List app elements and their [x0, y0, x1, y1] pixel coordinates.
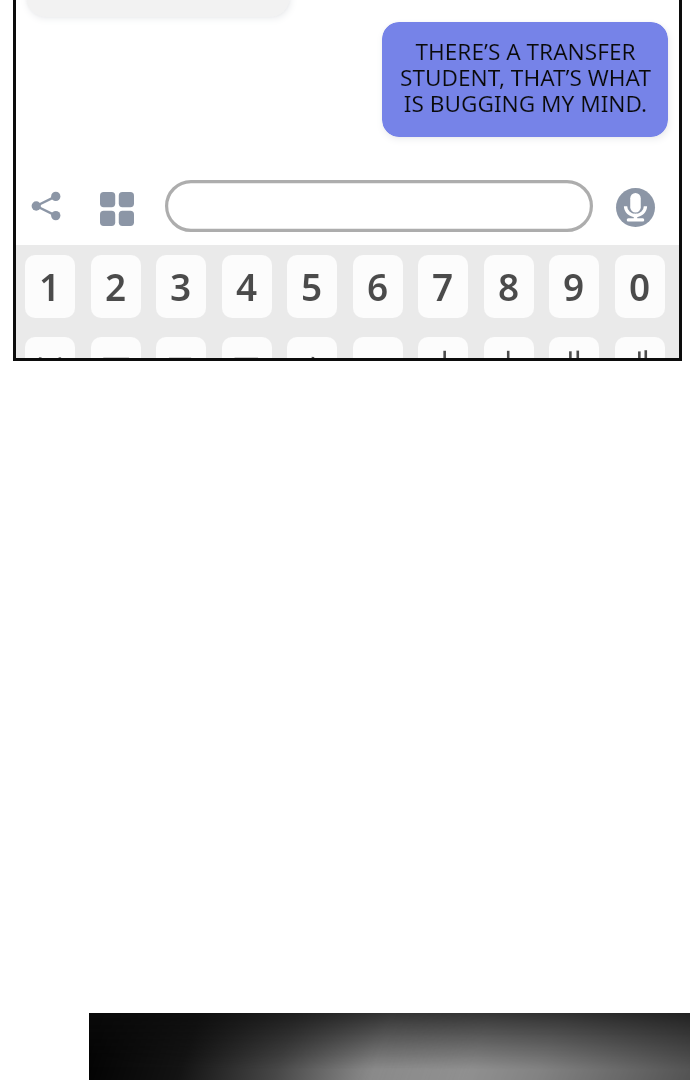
staticText: THERE’S A TRANSFER STUDENT, THAT’S WHAT …: [400, 36, 651, 119]
staticText: ㅅ: [293, 343, 331, 358]
button[interactable]: Share: [19, 179, 73, 233]
staticText: 8: [498, 261, 520, 311]
staticText: ㄷ: [162, 343, 200, 358]
button[interactable]: THERE’S A TRANSFER STUDENT, THAT’S WHAT …: [382, 22, 668, 137]
button[interactable]: ㅅ: [287, 337, 337, 358]
staticText: 5: [301, 261, 323, 311]
button[interactable]: ㄱ: [222, 337, 272, 358]
staticText: 9: [563, 261, 585, 311]
staticText: 4: [236, 261, 258, 311]
button[interactable]: [165, 180, 593, 232]
button[interactable]: 9: [549, 255, 599, 318]
staticText: ㅈ: [97, 343, 135, 358]
button[interactable]: Apps: [90, 182, 144, 236]
button[interactable]: ㅂ: [25, 337, 75, 358]
staticText: ㅐ: [555, 343, 593, 358]
staticText: 0: [629, 261, 651, 311]
button[interactable]: ㅕ: [418, 337, 468, 358]
button[interactable]: 6: [353, 255, 403, 318]
staticText: ㅑ: [490, 343, 528, 358]
button[interactable]: 8: [484, 255, 534, 318]
staticText: 2: [105, 261, 127, 311]
button[interactable]: Voice input: [608, 180, 662, 234]
staticText: 1: [39, 261, 61, 311]
button[interactable]: 1: [25, 255, 75, 318]
staticText: ㅕ: [424, 343, 462, 358]
button[interactable]: ㅔ: [615, 337, 665, 358]
staticText: ㅂ: [31, 343, 69, 358]
staticText: 7: [432, 261, 454, 311]
button[interactable]: ㅑ: [484, 337, 534, 358]
staticText: ㅔ: [621, 343, 659, 358]
button[interactable]: 2: [91, 255, 141, 318]
button[interactable]: 7: [418, 255, 468, 318]
staticText: 3: [170, 261, 192, 311]
staticText: ㄱ: [228, 343, 266, 358]
button[interactable]: 5: [287, 255, 337, 318]
button[interactable]: ㅈ: [91, 337, 141, 358]
button[interactable]: ㅛ: [353, 337, 403, 358]
button[interactable]: 4: [222, 255, 272, 318]
button[interactable]: 3: [156, 255, 206, 318]
button[interactable]: ㄷ: [156, 337, 206, 358]
button[interactable]: ㅐ: [549, 337, 599, 358]
button[interactable]: 0: [615, 255, 665, 318]
staticText: 6: [367, 261, 389, 311]
